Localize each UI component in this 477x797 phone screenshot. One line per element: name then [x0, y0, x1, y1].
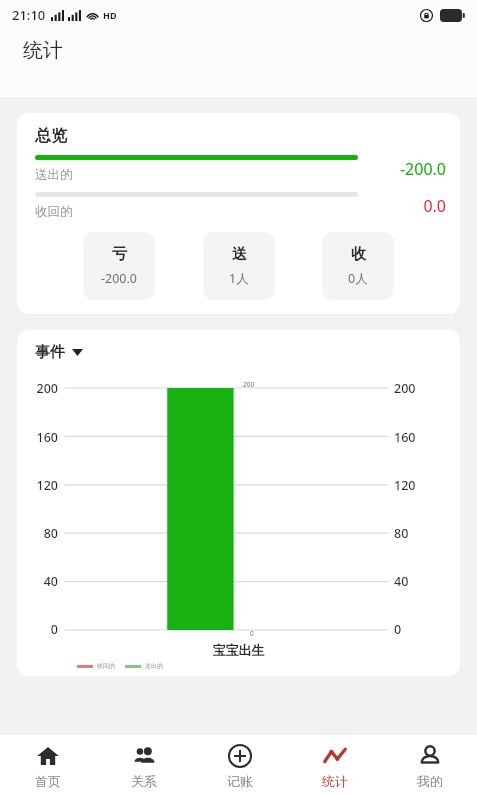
staticText: 记账 — [227, 773, 253, 789]
staticText: 40 — [394, 573, 409, 590]
button[interactable]: 关系 — [96, 735, 192, 797]
button[interactable]: 送 — [203, 232, 275, 300]
staticText: 亏 — [112, 245, 127, 264]
staticText: 160 — [36, 429, 58, 446]
staticText: 送出的 — [35, 167, 73, 183]
staticText: 80 — [43, 525, 58, 542]
staticText: 我的 — [417, 773, 443, 789]
staticText: HD — [103, 9, 117, 21]
staticText: 送 — [232, 245, 247, 264]
staticText: 0 — [250, 629, 254, 638]
staticText: 200 — [394, 380, 416, 397]
staticText: 宝宝出生 — [17, 642, 460, 658]
staticText: 事件 — [35, 343, 65, 362]
staticText: 收 — [351, 245, 366, 264]
button[interactable]: 统计 — [287, 735, 382, 797]
staticText: -200.0 — [101, 270, 137, 287]
staticText: 200 — [36, 380, 58, 397]
staticText: 200 — [243, 380, 255, 389]
staticText: 120 — [36, 477, 58, 494]
staticText: 160 — [394, 429, 416, 446]
staticText: -200.0 — [399, 158, 446, 180]
staticText: 0人 — [348, 270, 368, 287]
staticText: 40 — [43, 573, 58, 590]
staticText: 送出的 — [145, 662, 163, 670]
staticText: 总览 — [35, 126, 67, 146]
button[interactable]: 亏 — [83, 232, 155, 300]
staticText: 21:10 — [12, 6, 46, 24]
button[interactable]: 事件 — [35, 343, 83, 362]
staticText: 统计 — [23, 38, 63, 63]
staticText: 80 — [394, 525, 409, 542]
staticText: 首页 — [35, 773, 61, 789]
button[interactable]: 记账 — [192, 735, 287, 797]
button[interactable]: 我的 — [382, 735, 477, 797]
staticText: 收回的 — [35, 204, 73, 220]
staticText: 关系 — [131, 773, 157, 789]
staticText: 收回的 — [97, 662, 115, 670]
staticText: 0.0 — [423, 195, 446, 217]
button[interactable]: 首页 — [0, 735, 96, 797]
staticText: 1人 — [229, 270, 249, 287]
button[interactable]: 收 — [322, 232, 394, 300]
staticText: 0 — [50, 621, 58, 638]
staticText: 0 — [394, 621, 402, 638]
staticText: 统计 — [322, 773, 348, 789]
staticText: 120 — [394, 477, 416, 494]
